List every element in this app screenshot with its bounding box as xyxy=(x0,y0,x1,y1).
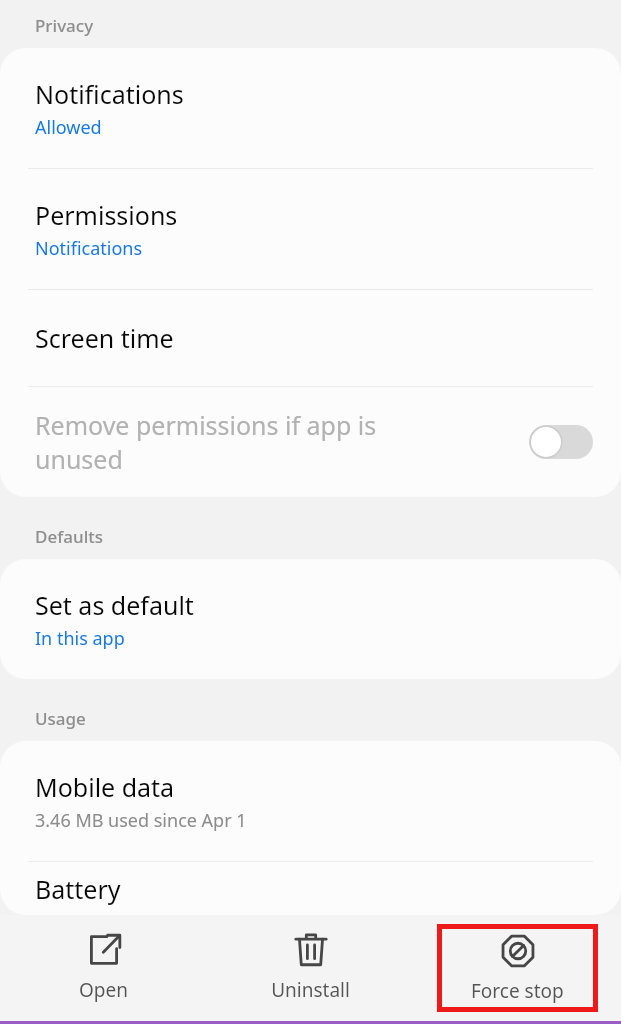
staticText: Allowed xyxy=(35,115,102,140)
staticText: Mobile data xyxy=(35,770,175,804)
button[interactable]: Set as default xyxy=(0,559,621,679)
button[interactable]: Battery xyxy=(0,862,621,915)
staticText: Set as default xyxy=(35,588,194,622)
staticText: Force stop xyxy=(471,978,564,1004)
button[interactable]: Force stop app xyxy=(442,929,593,1007)
staticText: Screen time xyxy=(35,321,174,355)
button[interactable]: Notifications xyxy=(0,48,621,168)
button[interactable]: Remove permissions if app is unused xyxy=(529,425,593,459)
button[interactable]: Remove permissions if app is unused xyxy=(0,387,621,497)
staticText: Notifications xyxy=(35,236,143,261)
staticText: Notifications xyxy=(35,77,184,111)
staticText: Privacy xyxy=(35,14,94,37)
staticText: Usage xyxy=(35,707,86,730)
staticText: In this app xyxy=(35,626,125,651)
button[interactable]: Mobile data xyxy=(0,741,621,861)
button[interactable]: Uninstall app xyxy=(271,915,350,1020)
staticText: Permissions xyxy=(35,198,178,232)
staticText: 3.46 MB used since Apr 1 xyxy=(35,808,247,833)
button[interactable]: Permissions xyxy=(0,169,621,289)
staticText: Battery xyxy=(35,872,121,906)
staticText: Defaults xyxy=(35,525,103,548)
staticText: Open xyxy=(79,977,128,1003)
button[interactable]: Screen time xyxy=(0,290,621,386)
staticText: Uninstall xyxy=(271,977,350,1003)
button[interactable]: Open app xyxy=(79,915,128,1020)
staticText: Remove permissions if app is unused xyxy=(35,408,377,476)
